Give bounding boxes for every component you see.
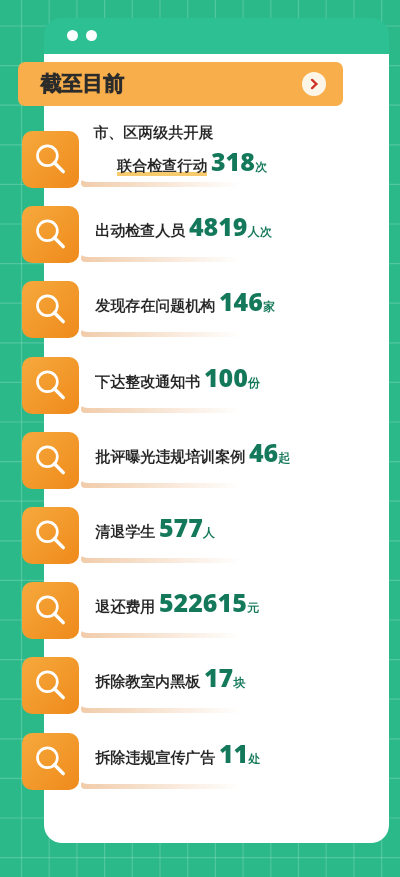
button[interactable]: 批评曝光违规培训案例 46起: [77, 421, 339, 483]
staticText: 市、区两级共开展: [93, 124, 213, 143]
staticText: 截至目前: [40, 71, 124, 97]
staticText: 发现存在问题机构 146家: [95, 284, 275, 318]
button[interactable]: 查看详情: [22, 657, 79, 714]
button[interactable]: 查看详情: [22, 733, 79, 790]
button[interactable]: 查看详情: [22, 357, 79, 414]
button[interactable]: 查看详情: [22, 281, 79, 338]
button[interactable]: 市、区两级共开展: [77, 120, 339, 182]
button[interactable]: 更多: [302, 72, 326, 96]
button[interactable]: 出动检查人员 4819人次: [77, 195, 339, 257]
button[interactable]: 查看详情: [22, 131, 79, 188]
button[interactable]: 清退学生 577人: [77, 496, 339, 558]
staticText: 退还费用 522615元: [95, 585, 259, 619]
button[interactable]: 下达整改通知书 100份: [77, 346, 339, 408]
staticText: 拆除违规宣传广告 11处: [95, 736, 261, 770]
button[interactable]: 截至目前: [18, 62, 343, 106]
button[interactable]: 查看详情: [22, 582, 79, 639]
staticText: 拆除教室内黑板 17块: [95, 660, 246, 694]
staticText: 清退学生 577人: [95, 510, 215, 544]
button[interactable]: 拆除教室内黑板 17块: [77, 646, 339, 708]
staticText: 下达整改通知书 100份: [95, 360, 260, 394]
button[interactable]: 发现存在问题机构 146家: [77, 270, 339, 332]
staticText: 出动检查人员 4819人次: [95, 209, 272, 243]
button[interactable]: 查看详情: [22, 507, 79, 564]
button[interactable]: 查看详情: [22, 432, 79, 489]
button[interactable]: 拆除违规宣传广告 11处: [77, 722, 339, 784]
staticText: 联合检查行动 318次: [117, 144, 267, 178]
button[interactable]: 查看详情: [22, 206, 79, 263]
button[interactable]: 退还费用 522615元: [77, 571, 339, 633]
staticText: 批评曝光违规培训案例 46起: [95, 435, 291, 469]
